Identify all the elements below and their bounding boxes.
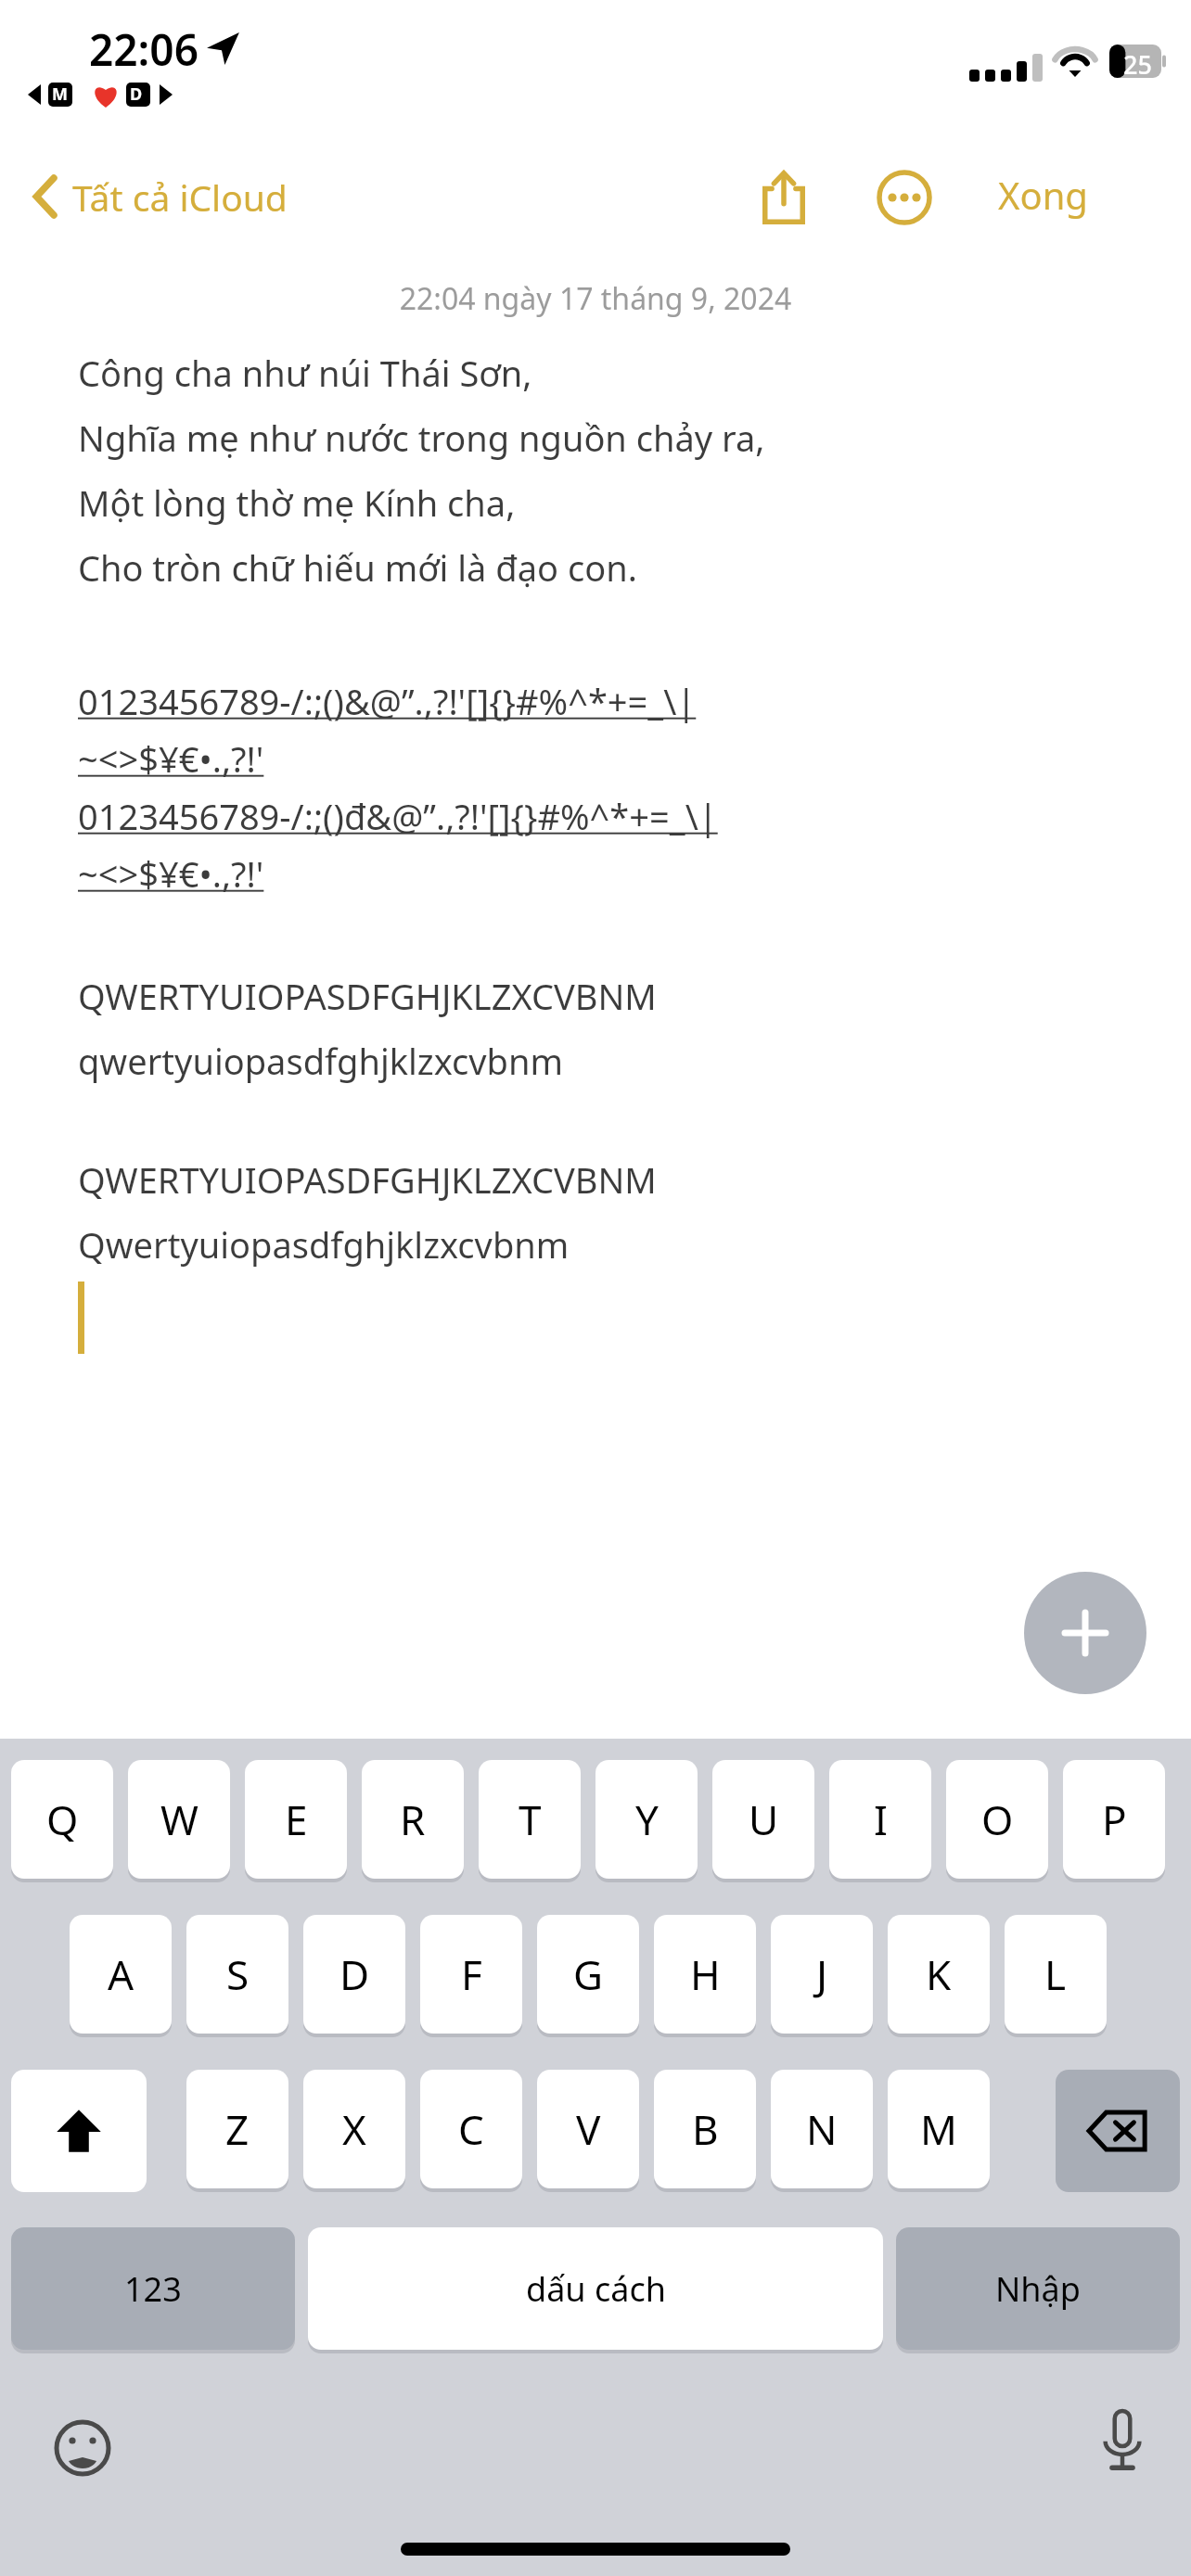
- staticText: Tất cả iCloud: [72, 172, 288, 222]
- staticText: H: [690, 1946, 721, 2002]
- staticText: U: [749, 1792, 779, 1847]
- button[interactable]: Backspace: [1056, 2070, 1180, 2192]
- staticText: QWERTYUIOPASDFGHJKLZXCVBNM: [78, 972, 657, 1020]
- button[interactable]: Add: [1024, 1572, 1146, 1694]
- staticText: B: [692, 2101, 719, 2157]
- button[interactable]: D: [303, 1915, 405, 2034]
- button[interactable]: Nhập: [896, 2227, 1180, 2350]
- button[interactable]: T: [479, 1760, 581, 1879]
- staticText: Cho tròn chữ hiếu mới là đạo con.: [78, 543, 637, 592]
- staticText: M: [52, 83, 68, 106]
- staticText: W: [160, 1792, 198, 1847]
- button[interactable]: A: [70, 1915, 172, 2034]
- staticText: Qwertyuiopasdfghjklzxcvbnm: [78, 1220, 570, 1269]
- button[interactable]: B: [654, 2070, 756, 2188]
- button[interactable]: dấu cách: [308, 2227, 883, 2350]
- button[interactable]: E: [245, 1760, 347, 1879]
- staticText: R: [400, 1792, 426, 1847]
- button[interactable]: I: [829, 1760, 931, 1879]
- button[interactable]: Q: [11, 1760, 113, 1879]
- staticText: M: [920, 2101, 957, 2157]
- button[interactable]: G: [537, 1915, 639, 2034]
- staticText: 22:04 ngày 17 tháng 9, 2024: [0, 278, 1191, 319]
- staticText: A: [108, 1946, 134, 2002]
- button[interactable]: X: [303, 2070, 405, 2188]
- button[interactable]: L: [1005, 1915, 1107, 2034]
- button[interactable]: Xong: [983, 156, 1103, 234]
- staticText: 123: [124, 2266, 182, 2312]
- staticText: Y: [635, 1792, 659, 1847]
- staticText: Xong: [998, 170, 1088, 220]
- staticText: G: [573, 1946, 604, 2002]
- staticText: D: [130, 83, 143, 106]
- staticText: T: [519, 1792, 542, 1847]
- button[interactable]: H: [654, 1915, 756, 2034]
- staticText: N: [806, 2101, 838, 2157]
- staticText: 0123456789-/:;()&@”.,?!'[]{}#%^*+=_\|: [78, 677, 697, 725]
- button[interactable]: S: [186, 1915, 288, 2034]
- button[interactable]: Z: [186, 2070, 288, 2188]
- staticText: 25: [1123, 47, 1152, 82]
- button[interactable]: M: [888, 2070, 990, 2188]
- staticText: Nghĩa mẹ như nước trong nguồn chảy ra,: [78, 414, 765, 462]
- staticText: Một lòng thờ mẹ Kính cha,: [78, 478, 516, 527]
- button[interactable]: R: [362, 1760, 464, 1879]
- button[interactable]: Y: [595, 1760, 698, 1879]
- button[interactable]: J: [771, 1915, 873, 2034]
- staticText: L: [1044, 1946, 1067, 2002]
- staticText: C: [458, 2101, 484, 2157]
- staticText: Q: [46, 1792, 79, 1847]
- staticText: 0123456789-/:;()đ&@”.,?!'[]{}#%^*+=_\|: [78, 792, 718, 840]
- staticText: P: [1102, 1792, 1127, 1847]
- staticText: S: [226, 1946, 250, 2002]
- button[interactable]: F: [420, 1915, 522, 2034]
- staticText: ~<>$¥€•.,?!': [78, 734, 264, 783]
- staticText: 22:06: [89, 20, 198, 79]
- button[interactable]: Share: [742, 156, 826, 239]
- button[interactable]: P: [1063, 1760, 1165, 1879]
- button[interactable]: Tất cả iCloud: [22, 158, 297, 236]
- button[interactable]: V: [537, 2070, 639, 2188]
- staticText: ~<>$¥€•.,?!': [78, 849, 264, 898]
- staticText: D: [339, 1946, 370, 2002]
- button[interactable]: Dictation: [1081, 2399, 1164, 2482]
- staticText: Nhập: [995, 2266, 1081, 2312]
- staticText: Z: [225, 2101, 250, 2157]
- button[interactable]: U: [712, 1760, 814, 1879]
- staticText: X: [342, 2101, 366, 2157]
- button[interactable]: More options: [863, 156, 946, 239]
- button[interactable]: O: [946, 1760, 1048, 1879]
- staticText: QWERTYUIOPASDFGHJKLZXCVBNM: [78, 1155, 657, 1204]
- staticText: V: [576, 2101, 601, 2157]
- staticText: O: [981, 1792, 1014, 1847]
- staticText: dấu cách: [526, 2266, 666, 2312]
- button[interactable]: C: [420, 2070, 522, 2188]
- staticText: I: [874, 1792, 888, 1847]
- staticText: F: [461, 1946, 482, 2002]
- button[interactable]: Shift: [11, 2070, 147, 2192]
- button[interactable]: K: [888, 1915, 990, 2034]
- button[interactable]: W: [128, 1760, 230, 1879]
- button[interactable]: N: [771, 2070, 873, 2188]
- staticText: E: [285, 1792, 308, 1847]
- staticText: qwertyuiopasdfghjklzxcvbnm: [78, 1037, 563, 1085]
- staticText: J: [816, 1946, 828, 2002]
- button[interactable]: 123: [11, 2227, 295, 2350]
- staticText: K: [926, 1946, 952, 2002]
- button[interactable]: Emoji: [41, 2406, 124, 2490]
- staticText: Công cha như núi Thái Sơn,: [78, 349, 532, 397]
